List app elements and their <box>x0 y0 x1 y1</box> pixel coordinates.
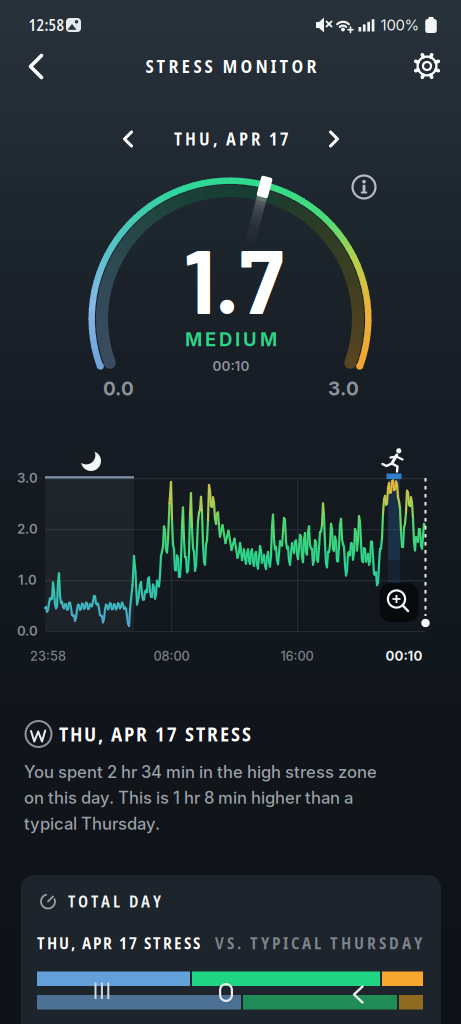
button[interactable]: Back <box>14 44 58 88</box>
staticText: T H U , A P R 1 7 S T R E S S <box>37 932 200 954</box>
staticText: 23:58 <box>30 648 66 664</box>
staticText: You spent 2 hr 34 min in the high stress… <box>24 762 377 834</box>
staticText: 3.0 <box>328 377 359 400</box>
staticText: V S . T Y P I C A L T H U R S D A Y <box>215 932 422 954</box>
staticText: 08:00 <box>153 648 189 664</box>
button[interactable]: Settings <box>405 44 449 88</box>
staticText: S T R E S S M O N I T O R <box>145 54 316 78</box>
staticText: 0.0 <box>103 377 134 400</box>
button[interactable]: Next day <box>319 124 349 154</box>
staticText: T H U , A P R 1 7 S T R E S S <box>59 721 251 747</box>
staticText: M E D I U M <box>185 328 277 351</box>
staticText: 2.0 <box>17 521 38 537</box>
staticText: 12:58 <box>28 14 64 35</box>
staticText: 1.7 <box>183 225 283 332</box>
staticText: 0.0 <box>17 623 38 639</box>
staticText: 100% <box>380 16 419 34</box>
button[interactable]: Previous day <box>113 124 143 154</box>
button[interactable]: About stress monitor <box>346 169 382 205</box>
staticText: 00:10 <box>212 358 249 374</box>
staticText: T O T A L D A Y <box>68 891 161 912</box>
staticText: T H U , A P R 1 7 <box>174 127 288 151</box>
staticText: 16:00 <box>280 648 313 664</box>
staticText: 1.0 <box>18 572 37 588</box>
staticText: 00:10 <box>385 648 422 664</box>
staticText: 3.0 <box>17 470 38 486</box>
button[interactable]: Zoom chart <box>377 580 421 624</box>
